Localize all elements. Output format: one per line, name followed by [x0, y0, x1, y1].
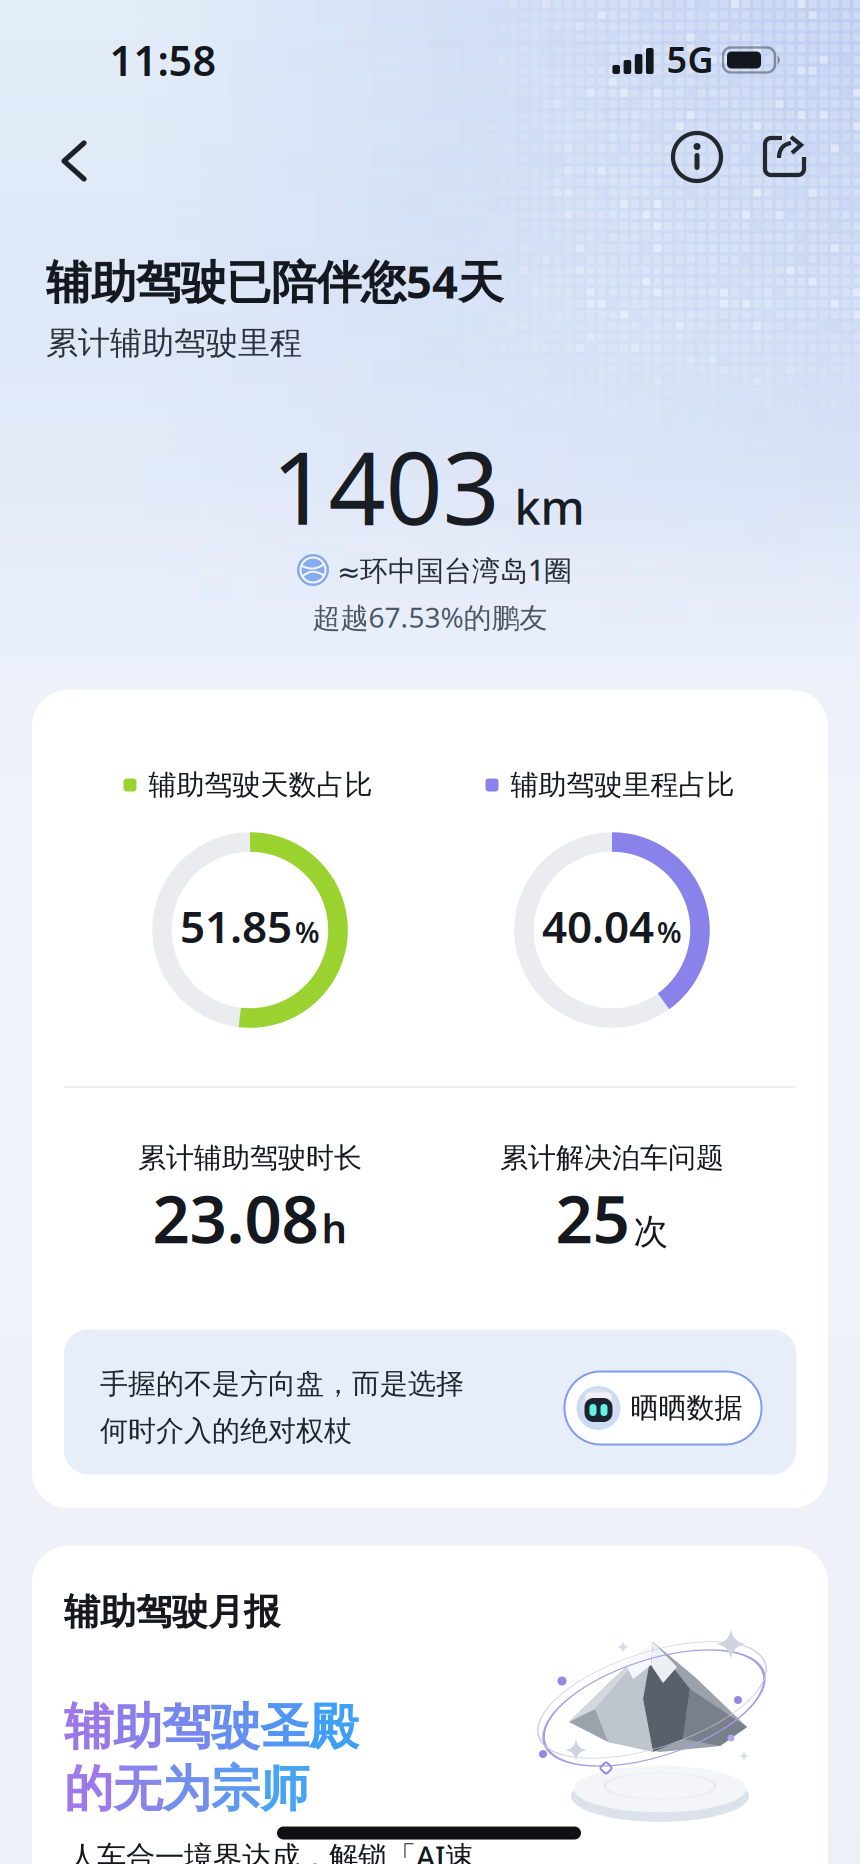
staticText: 驶	[211, 1697, 260, 1757]
staticText: 累计解决泊车问题	[500, 1141, 724, 1175]
button[interactable]: Back	[57, 139, 91, 183]
staticText: 23.08	[152, 1175, 318, 1261]
staticText: 5G	[666, 35, 713, 83]
staticText: %	[295, 914, 320, 951]
button[interactable]: 晒晒数据	[564, 1371, 761, 1444]
staticText: 无	[113, 1759, 162, 1819]
staticText: %	[657, 914, 682, 951]
staticText: h	[321, 1201, 347, 1254]
staticText: 累计辅助驾驶时长	[138, 1141, 362, 1175]
staticText: 圣	[260, 1697, 309, 1757]
staticText: 为	[162, 1759, 211, 1819]
staticText: km	[514, 476, 584, 538]
staticText: 手握的不是方向盘，而是选择	[100, 1367, 464, 1401]
button[interactable]: Share	[763, 136, 807, 178]
staticText: 助	[113, 1697, 162, 1757]
staticText: 驾	[162, 1697, 211, 1757]
staticText: 宗	[211, 1759, 260, 1819]
staticText: 1403	[271, 420, 499, 552]
staticText: 11:58	[109, 33, 216, 87]
staticText: 超越67.53%的鹏友	[312, 598, 547, 636]
staticText: 51.85	[180, 897, 292, 955]
staticText: 辅	[64, 1697, 113, 1757]
staticText: 40.04	[542, 897, 654, 955]
staticText: 殿	[309, 1697, 358, 1757]
staticText: 的	[64, 1759, 113, 1819]
staticText: 25	[555, 1175, 629, 1261]
button[interactable]: Info	[670, 130, 724, 184]
staticText: 次	[633, 1210, 668, 1253]
staticText: 何时介入的绝对权杖	[100, 1414, 352, 1448]
staticText: 辅助驾驶已陪伴您54天	[46, 251, 503, 311]
staticText: 师	[260, 1759, 309, 1819]
staticText: 累计辅助驾驶里程	[46, 323, 302, 363]
staticText: ≈环中国台湾岛1圈	[337, 551, 572, 589]
staticText: 辅助驾驶月报	[64, 1590, 280, 1634]
staticText: 辅助驾驶天数占比	[148, 768, 372, 802]
staticText: 辅助驾驶里程占比	[510, 768, 734, 802]
staticText: 晒晒数据	[630, 1391, 742, 1425]
staticText: 人车合一境界达成，解锁「AI速	[68, 1836, 474, 1864]
